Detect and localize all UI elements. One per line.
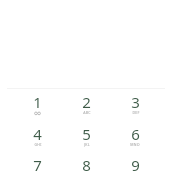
button[interactable]: 6 (112, 124, 158, 154)
staticText: 4 (33, 124, 42, 144)
button[interactable]: 2 (63, 92, 109, 122)
staticText: MNO (130, 142, 140, 147)
staticText: 8 (82, 155, 91, 172)
button[interactable]: 7 (14, 155, 60, 172)
staticText: 3 (131, 92, 140, 112)
staticText: ABC (83, 110, 91, 115)
staticText: DEF (132, 110, 140, 115)
button[interactable]: 9 (112, 155, 158, 172)
staticText: 6 (131, 124, 140, 144)
staticText: JKL (84, 142, 90, 147)
button[interactable]: 8 (63, 155, 109, 172)
button[interactable]: 5 (63, 124, 109, 154)
staticText: 2 (82, 92, 91, 112)
button[interactable]: Key 1, voicemail (14, 92, 60, 122)
staticText: 9 (131, 155, 140, 172)
staticText: GHI (34, 142, 42, 147)
button[interactable]: 4 (14, 124, 60, 154)
staticText: 5 (82, 124, 91, 144)
staticText: 7 (33, 155, 42, 172)
staticText: 1 (33, 92, 42, 112)
button[interactable]: 3 (112, 92, 158, 122)
